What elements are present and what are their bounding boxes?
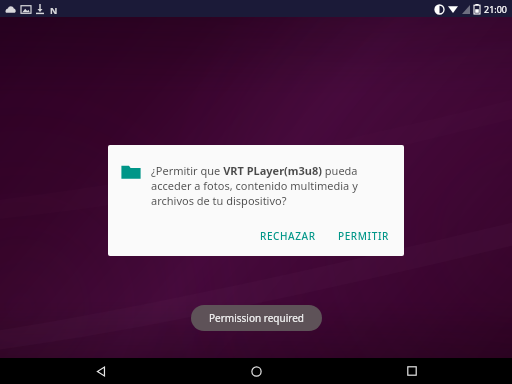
- staticText: Permission required: [209, 311, 304, 325]
- staticText: ¿Permitir que VRT PLayer(m3u8) pueda acc…: [151, 163, 386, 208]
- staticText: 21:00: [484, 3, 508, 15]
- staticText: PERMITIR: [338, 229, 389, 243]
- button[interactable]: Back: [78, 358, 122, 384]
- button[interactable]: PERMITIR: [329, 222, 398, 250]
- button[interactable]: RECHAZAR: [251, 222, 325, 250]
- staticText: RECHAZAR: [260, 229, 316, 243]
- button[interactable]: Recent apps: [390, 358, 434, 384]
- staticText: N: [50, 4, 58, 14]
- button[interactable]: Home: [234, 358, 278, 384]
